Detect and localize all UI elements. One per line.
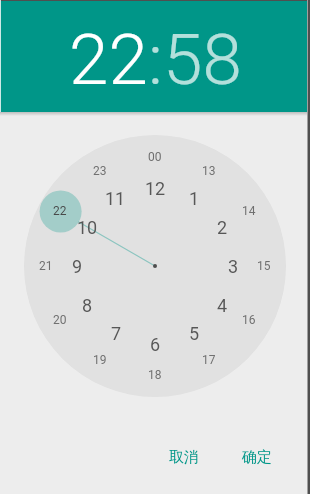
button[interactable]: 19 <box>88 350 112 370</box>
staticText: 20 <box>53 313 67 327</box>
button[interactable]: 22 <box>48 201 72 221</box>
staticText: 取消 <box>169 448 199 467</box>
staticText: 11 <box>105 188 126 209</box>
button[interactable]: 2 <box>208 215 236 239</box>
button[interactable]: 21 <box>34 256 58 276</box>
staticText: 12 <box>145 178 166 199</box>
button[interactable]: 3 <box>219 254 247 278</box>
staticText: 1 <box>189 188 200 209</box>
button[interactable]: 4 <box>208 293 236 317</box>
staticText: : <box>148 18 163 101</box>
staticText: 22 <box>53 204 67 218</box>
button[interactable]: 6 <box>141 332 169 356</box>
staticText: 00 <box>148 150 162 164</box>
button[interactable]: 7 <box>102 321 130 345</box>
staticText: 19 <box>93 353 107 367</box>
staticText: 23 <box>93 164 107 178</box>
button[interactable]: 确定 <box>224 439 290 475</box>
staticText: 8 <box>82 295 93 316</box>
button[interactable]: 12 <box>141 176 169 200</box>
staticText: 7 <box>111 323 122 344</box>
button[interactable]: 15 <box>252 256 276 276</box>
staticText: 21 <box>39 259 53 273</box>
button[interactable]: 00 <box>143 147 167 167</box>
staticText: 6 <box>150 334 161 355</box>
button[interactable]: 58 <box>163 18 242 101</box>
button[interactable]: 20 <box>48 310 72 330</box>
button[interactable]: 1 <box>180 186 208 210</box>
staticText: 确定 <box>242 448 272 467</box>
staticText: 14 <box>242 204 256 218</box>
button[interactable]: 8 <box>73 293 101 317</box>
button[interactable]: 17 <box>197 350 221 370</box>
button[interactable]: 16 <box>237 310 261 330</box>
staticText: 13 <box>202 164 216 178</box>
staticText: 17 <box>202 353 216 367</box>
button[interactable]: 22 <box>69 18 148 101</box>
staticText: 3 <box>228 256 239 277</box>
staticText: 5 <box>189 323 200 344</box>
button[interactable]: 13 <box>197 161 221 181</box>
staticText: 16 <box>242 313 256 327</box>
button[interactable]: 14 <box>237 201 261 221</box>
button[interactable]: 23 <box>88 161 112 181</box>
staticText: 15 <box>257 259 271 273</box>
button[interactable]: 5 <box>180 321 208 345</box>
staticText: 4 <box>217 295 228 316</box>
button[interactable]: 10 <box>73 215 101 239</box>
staticText: 18 <box>148 368 162 382</box>
staticText: 2 <box>217 217 228 238</box>
button[interactable]: 11 <box>101 186 129 210</box>
staticText: 9 <box>72 256 83 277</box>
button[interactable]: 取消 <box>151 439 217 475</box>
button[interactable]: 9 <box>63 254 91 278</box>
button[interactable]: 18 <box>143 365 167 385</box>
staticText: 10 <box>77 217 98 238</box>
